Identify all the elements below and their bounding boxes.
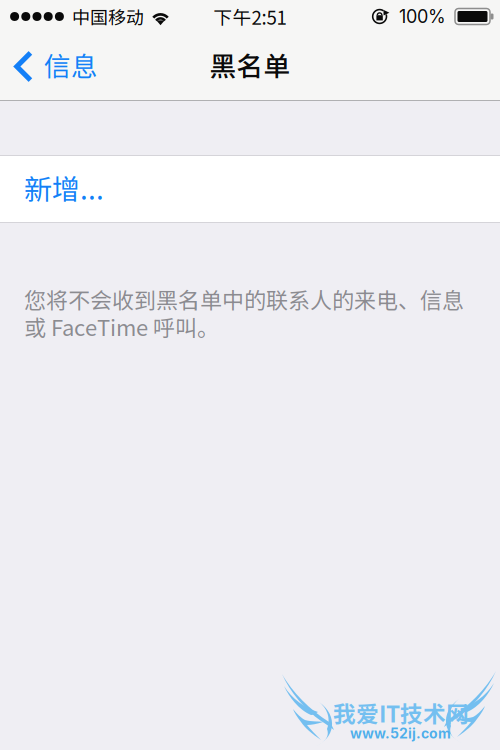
button[interactable]: 新增... [0,156,500,222]
staticText: 或 FaceTime 呼叫。 [24,310,219,342]
staticText: 新增... [24,167,104,208]
staticText: 下午2:51 [213,3,286,30]
staticText: 100% [399,6,446,27]
staticText: 我爱IT技术网 [333,696,469,729]
button[interactable]: 信息 [0,36,108,96]
staticText: 您将不会收到黑名单中的联系人的来电、信息 [24,283,464,315]
staticText: 中国移动 [72,3,144,30]
staticText: 信息 [44,45,98,84]
staticText: www.52ij.com [350,725,451,742]
staticText: 黑名单 [209,45,290,84]
